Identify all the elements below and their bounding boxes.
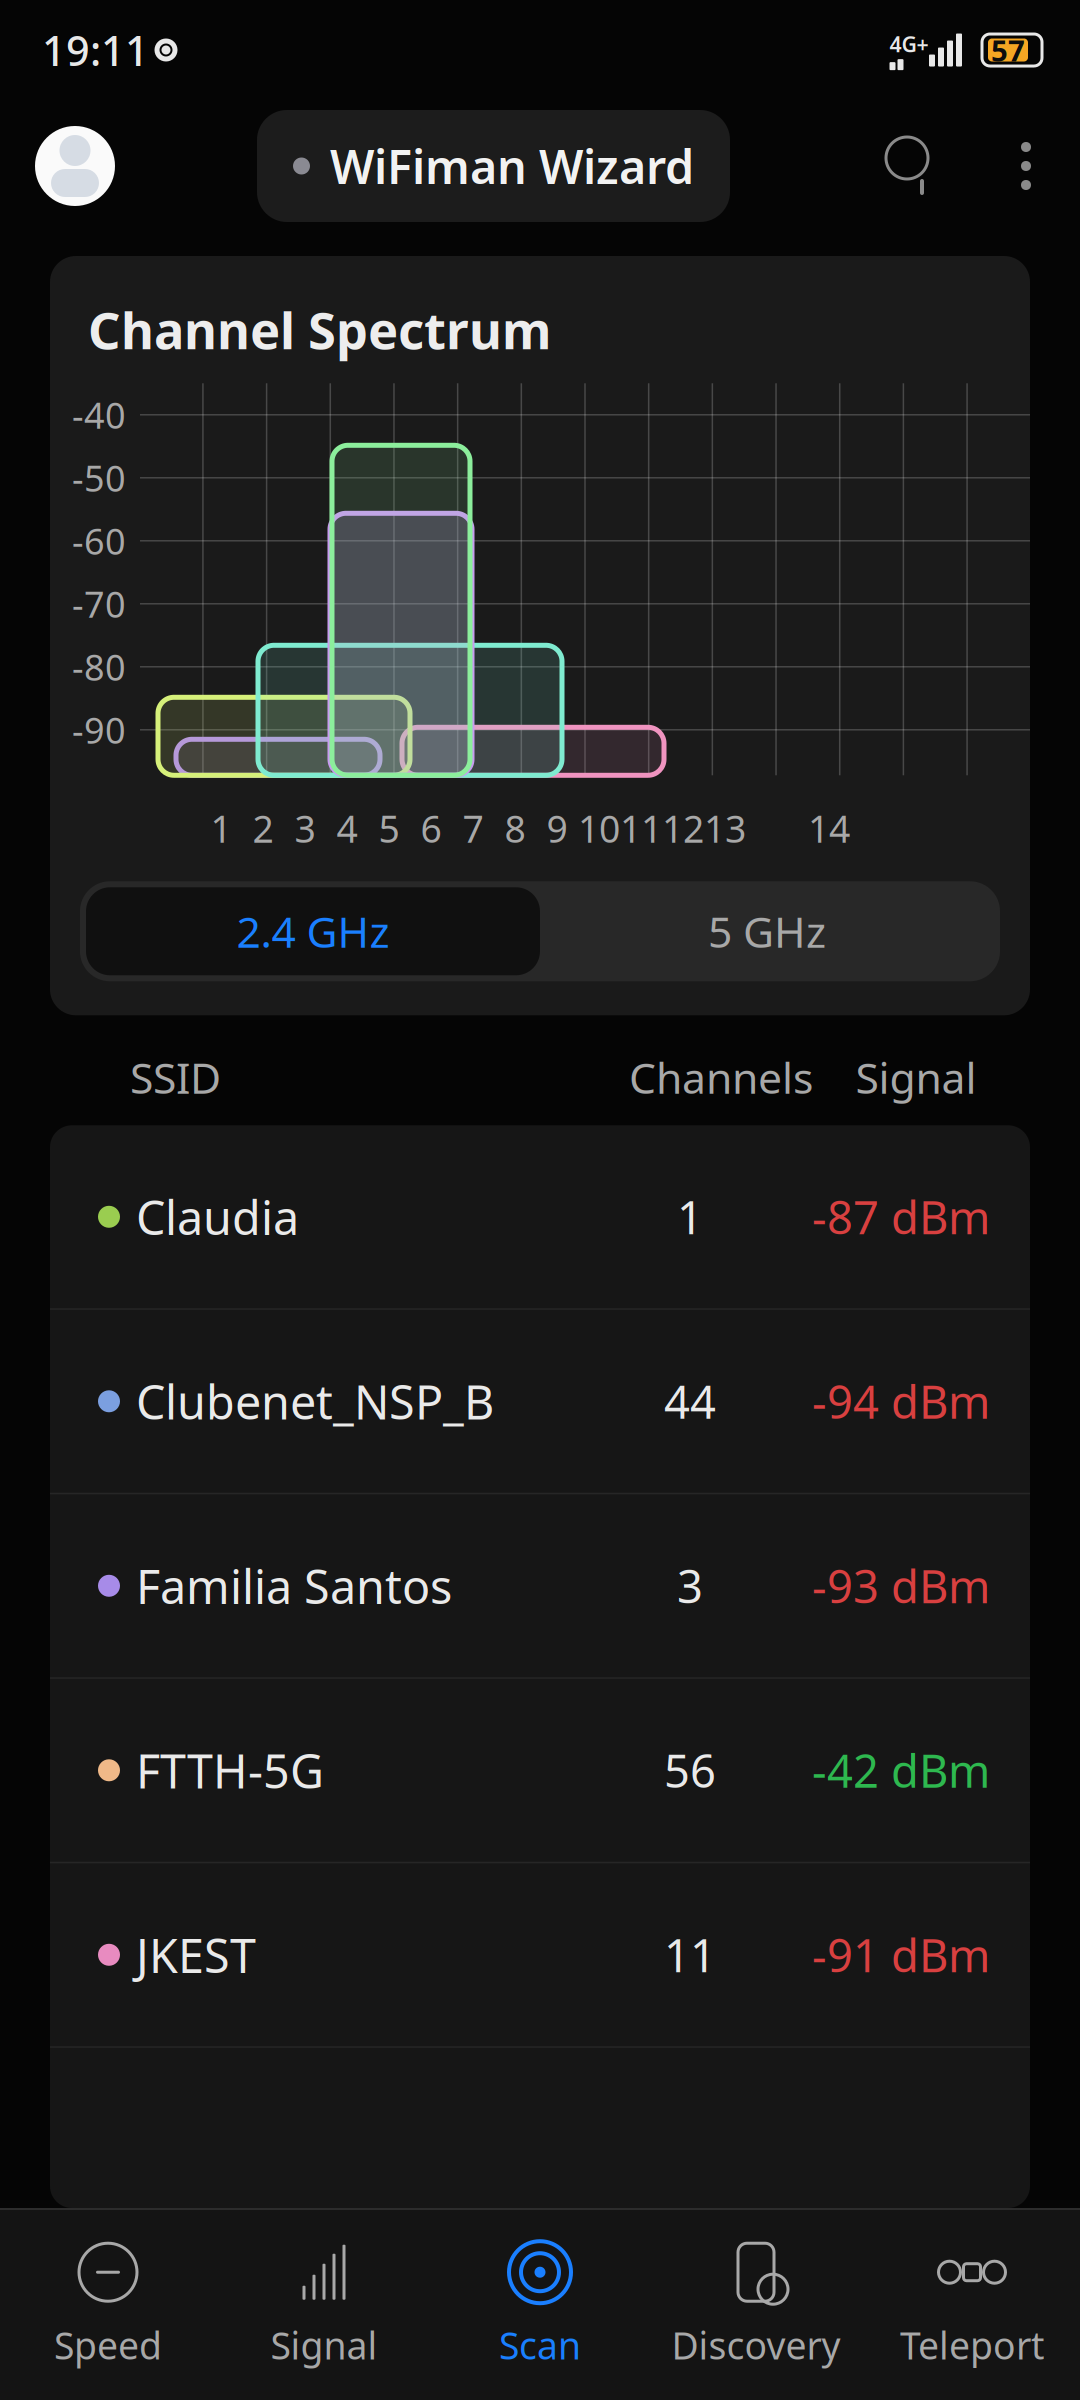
button[interactable]: 2.4 GHz <box>86 887 540 975</box>
button[interactable]: WiFiman Wizard <box>257 110 730 222</box>
staticText: 11 <box>664 1925 716 1985</box>
staticText: 44 <box>664 1371 716 1431</box>
button[interactable]: Profile <box>35 126 115 206</box>
staticText: 12 <box>662 803 704 853</box>
staticText: -50 <box>72 454 126 502</box>
staticText: Discovery <box>671 2320 840 2370</box>
staticText: 8 <box>504 803 525 853</box>
staticText: -87 dBm <box>812 1187 990 1247</box>
staticText: Familia Santos <box>136 1555 452 1617</box>
staticText: -80 <box>72 643 126 691</box>
staticText: Claudia <box>136 1186 299 1248</box>
staticText: 2 <box>252 803 273 853</box>
staticText: Speed <box>54 2320 162 2370</box>
staticText: 1 <box>210 803 231 853</box>
button[interactable]: Claudia <box>50 1125 1030 1308</box>
staticText: WiFiman Wizard <box>330 135 694 197</box>
staticText: 3 <box>294 803 315 853</box>
button[interactable]: Signal <box>216 2210 432 2400</box>
staticText: -90 <box>72 706 126 754</box>
button[interactable]: FTTH-5G <box>50 1679 1030 1862</box>
staticText: 4 <box>336 803 357 853</box>
staticText: Channels <box>629 1049 813 1106</box>
staticText: Channel Spectrum <box>88 296 551 363</box>
staticText: 10 <box>578 803 620 853</box>
staticText: Scan <box>499 2320 581 2370</box>
staticText: 5 <box>378 803 399 853</box>
staticText: 9 <box>546 803 567 853</box>
staticText: Teleport <box>900 2320 1044 2370</box>
staticText: 13 <box>704 803 746 853</box>
staticText: 3 <box>677 1556 703 1616</box>
staticText: -93 dBm <box>812 1556 990 1616</box>
button[interactable]: Clubenet_NSP_B <box>50 1310 1030 1493</box>
staticText: -70 <box>72 580 126 628</box>
staticText: 14 <box>808 803 850 853</box>
staticText: 5 GHz <box>708 903 826 960</box>
button[interactable]: 5 GHz <box>540 887 994 975</box>
button[interactable]: Discovery <box>648 2210 864 2400</box>
staticText: -42 dBm <box>812 1740 990 1800</box>
staticText: Clubenet_NSP_B <box>136 1370 494 1432</box>
staticText: 57 <box>991 30 1025 69</box>
staticText: 11 <box>620 803 662 853</box>
staticText: 6 <box>420 803 441 853</box>
staticText: 2.4 GHz <box>236 903 389 960</box>
staticText: SSID <box>130 1049 221 1106</box>
staticText: -91 dBm <box>812 1925 990 1985</box>
staticText: 7 <box>462 803 483 853</box>
staticText: -40 <box>72 391 126 439</box>
staticText: Signal <box>270 2320 377 2370</box>
button[interactable]: Search <box>872 126 942 206</box>
staticText: 56 <box>664 1740 716 1800</box>
staticText: 4G+ <box>889 30 928 58</box>
button[interactable]: Scan <box>432 2210 648 2400</box>
staticText: 1 <box>677 1187 703 1247</box>
staticText: 19:11 <box>42 23 149 77</box>
button[interactable]: Teleport <box>864 2210 1080 2400</box>
staticText: JKEST <box>136 1924 256 1986</box>
button[interactable]: More options <box>998 126 1054 206</box>
staticText: Signal <box>855 1049 976 1106</box>
button[interactable]: Familia Santos <box>50 1494 1030 1677</box>
staticText: -94 dBm <box>812 1371 990 1431</box>
button[interactable]: JKEST <box>50 1863 1030 2046</box>
staticText: FTTH-5G <box>136 1739 324 1801</box>
staticText: -60 <box>72 517 126 565</box>
button[interactable]: Speed <box>0 2210 216 2400</box>
